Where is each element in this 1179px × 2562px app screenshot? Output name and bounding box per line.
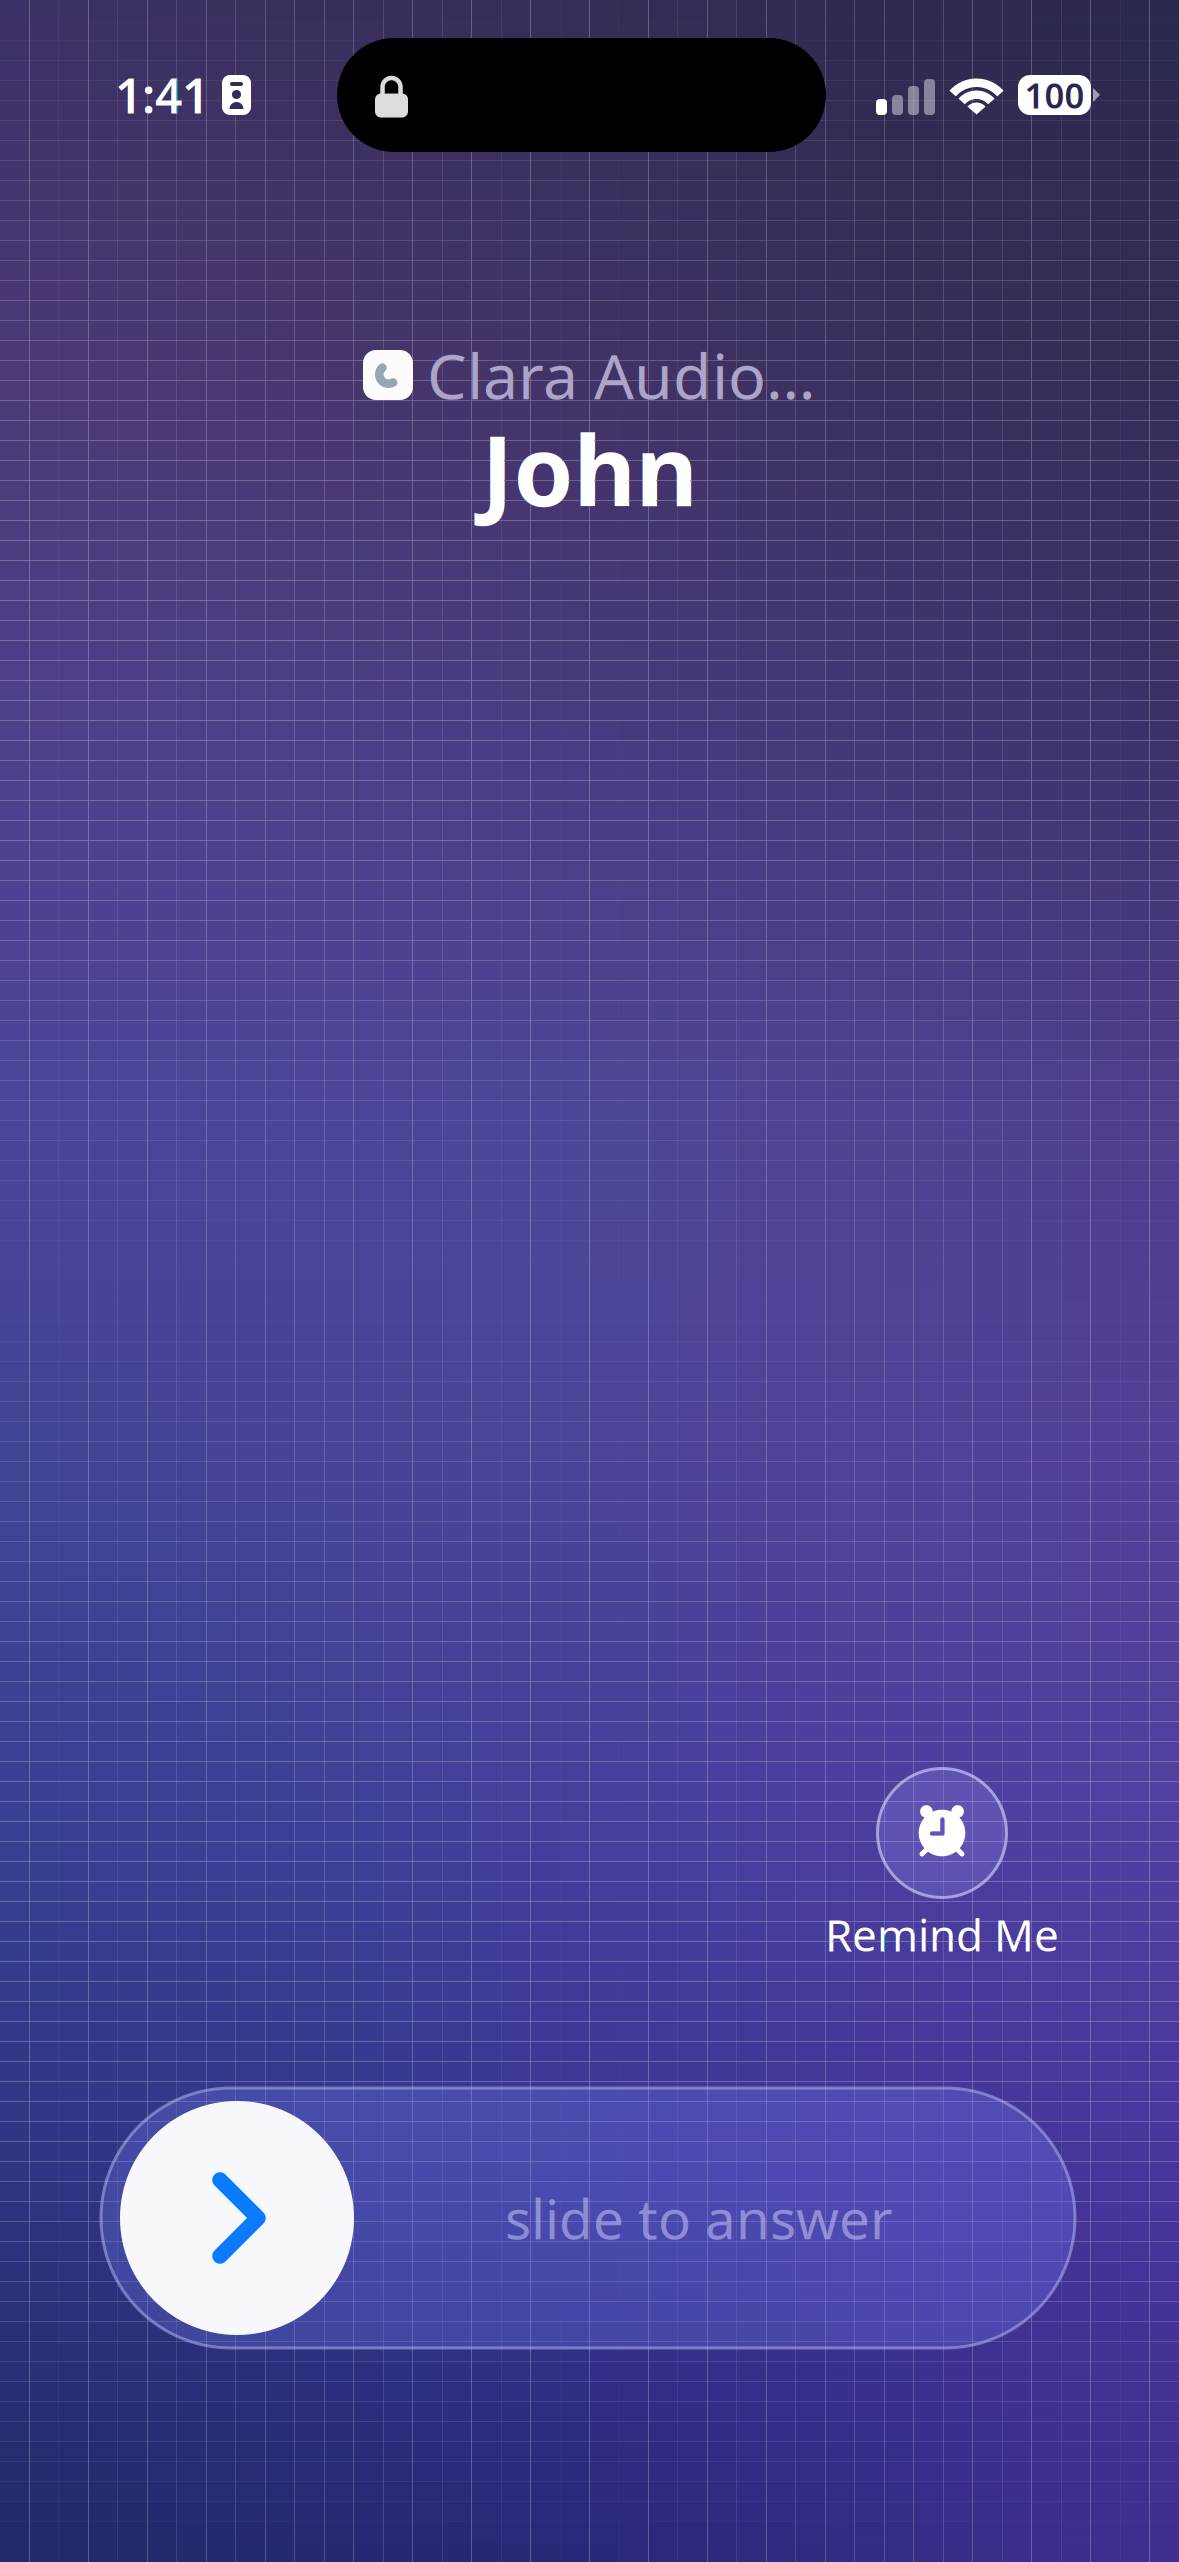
staticText: slide to answer bbox=[505, 2182, 893, 2254]
staticText: 100 bbox=[1024, 72, 1084, 118]
button[interactable]: Remind Me bbox=[792, 1768, 1092, 1971]
staticText: John bbox=[481, 405, 697, 533]
button[interactable]: slide to answer bbox=[101, 2088, 1075, 2348]
staticText: 1:41 bbox=[115, 63, 209, 127]
staticText: Remind Me bbox=[825, 1905, 1059, 1964]
staticText: Clara Audio… bbox=[427, 333, 816, 417]
